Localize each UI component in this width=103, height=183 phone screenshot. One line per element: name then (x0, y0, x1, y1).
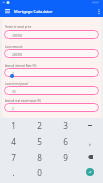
staticText: 4 (12, 72, 14, 76)
staticText: , (89, 136, 92, 147)
button[interactable]: 30 (4, 86, 99, 95)
button[interactable]: 2 (26, 117, 52, 133)
staticText: 9 (63, 152, 68, 163)
button[interactable]: . (0, 164, 26, 180)
staticText: Mortgage Calculator (14, 9, 53, 14)
staticText: Annual interest Rate (%) (5, 64, 37, 68)
button[interactable]: 2 (4, 103, 99, 112)
staticText: 2 (12, 107, 14, 111)
staticText: Loan amount (5, 45, 23, 49)
staticText: Loan term (years) (5, 82, 29, 86)
button[interactable]: 1 (0, 117, 26, 133)
button[interactable]: 4 (0, 133, 26, 149)
button[interactable]: Menu (2, 6, 12, 16)
staticText: 3 (63, 120, 68, 131)
button[interactable]: 4 (4, 68, 99, 77)
staticText: 8 (37, 152, 42, 163)
staticText: 5 (37, 136, 42, 147)
button[interactable]: 6 (52, 133, 78, 149)
button[interactable]: 3 (52, 117, 78, 133)
button[interactable]: 240000 (4, 49, 99, 58)
staticText: 30 (12, 90, 16, 94)
staticText: 1 (11, 120, 16, 131)
button[interactable]: 7 (0, 149, 26, 165)
staticText: 7 (11, 152, 16, 163)
staticText: 2 (37, 120, 42, 131)
staticText: Annual real estate taxes (%) (5, 99, 42, 103)
button[interactable]: , (77, 133, 103, 149)
staticText: 4 (11, 136, 16, 147)
button[interactable]: 300000 (4, 30, 99, 39)
button[interactable]: 0 (26, 164, 52, 180)
button[interactable]: Backspace (84, 151, 96, 163)
button[interactable]: 9 (52, 149, 78, 165)
staticText: 6 (63, 136, 68, 147)
button[interactable]: Done (86, 168, 94, 176)
staticText: 300000 (12, 34, 23, 38)
staticText: 0 (37, 167, 42, 178)
staticText: Home or asset price (5, 25, 32, 29)
staticText: . (12, 167, 15, 178)
button[interactable]: More options (94, 7, 103, 16)
button[interactable]: 8 (26, 149, 52, 165)
button[interactable]: Minus (84, 119, 96, 131)
button[interactable]: 5 (26, 133, 52, 149)
staticText: 240000 (12, 53, 23, 57)
